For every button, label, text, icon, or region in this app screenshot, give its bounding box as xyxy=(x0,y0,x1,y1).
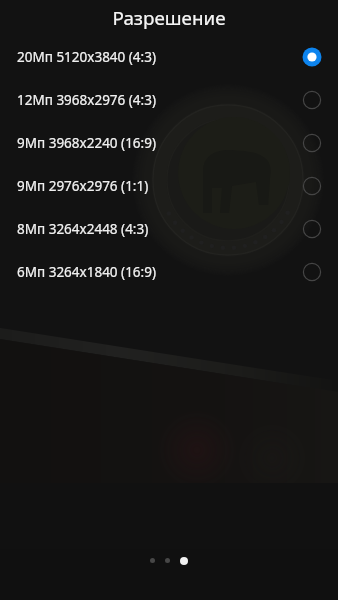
staticText: 9Мп 3968x2240 (16:9) xyxy=(17,134,156,152)
staticText: 9Мп 2976x2976 (1:1) xyxy=(17,177,149,195)
staticText: 8Мп 3264x2448 (4:3) xyxy=(17,220,149,238)
button[interactable]: 12Мп 3968x2976 (4:3) xyxy=(0,78,338,121)
button[interactable]: 9Мп 3968x2240 (16:9) xyxy=(0,121,338,164)
button[interactable]: Page 1 xyxy=(150,558,155,563)
button[interactable]: 6Мп 3264x1840 (16:9) xyxy=(0,250,338,293)
button[interactable]: 8Мп 3264x2448 (4:3) xyxy=(0,207,338,250)
button[interactable]: 9Мп 2976x2976 (1:1) xyxy=(0,164,338,207)
staticText: Разрешение xyxy=(112,5,226,31)
staticText: 6Мп 3264x1840 (16:9) xyxy=(17,263,156,281)
staticText: 12Мп 3968x2976 (4:3) xyxy=(17,91,156,109)
button[interactable]: 20Мп 5120x3840 (4:3) xyxy=(0,35,338,78)
button[interactable]: Page 3, current xyxy=(180,557,188,565)
staticText: 20Мп 5120x3840 (4:3) xyxy=(17,48,156,66)
button[interactable]: Page 2 xyxy=(165,558,170,563)
